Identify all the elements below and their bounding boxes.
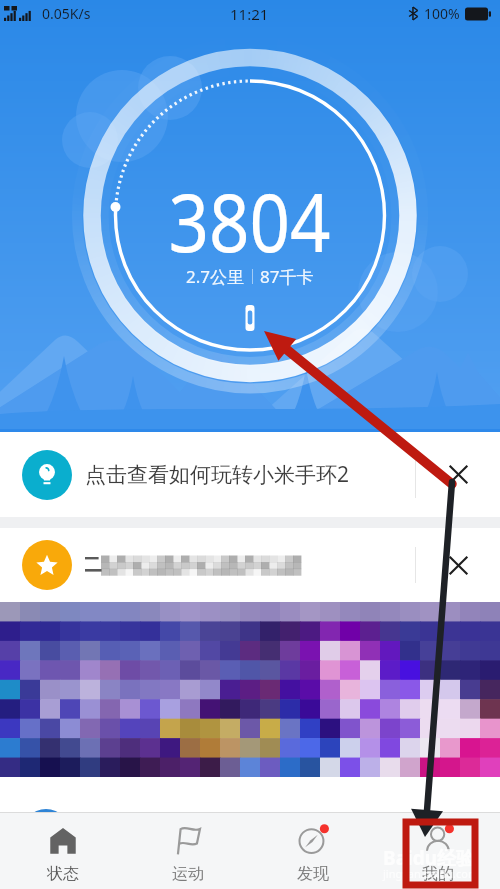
staticText: 87千卡 xyxy=(260,265,314,288)
staticText: 点击查看如何玩转小米手环2 xyxy=(85,460,350,489)
staticText: jingyan.baidu.com xyxy=(383,866,479,881)
button[interactable]: 发现 Discover xyxy=(250,813,375,889)
staticText: 11:21 xyxy=(230,4,269,24)
staticText: 2.7公里 xyxy=(186,265,245,288)
button[interactable]: Close xyxy=(0,528,500,602)
button[interactable]: 运动 Workout xyxy=(125,813,250,889)
staticText: Baidu经验 xyxy=(383,845,476,871)
staticText: 3804 xyxy=(169,166,331,275)
staticText: 运动 xyxy=(172,864,204,884)
button[interactable]: 点击查看如何玩转小米手环2 xyxy=(0,432,500,517)
button[interactable]: 我的 Profile xyxy=(375,813,500,889)
staticText: 100% xyxy=(424,4,460,23)
staticText: 状态 xyxy=(47,864,79,884)
button[interactable]: Close xyxy=(416,528,500,602)
button[interactable]: 状态 Status xyxy=(0,813,125,889)
staticText: 0.05K/s xyxy=(42,4,91,23)
staticText: 发现 xyxy=(297,864,329,884)
button[interactable]: Close xyxy=(416,432,500,517)
staticText: 我的 xyxy=(422,864,454,884)
